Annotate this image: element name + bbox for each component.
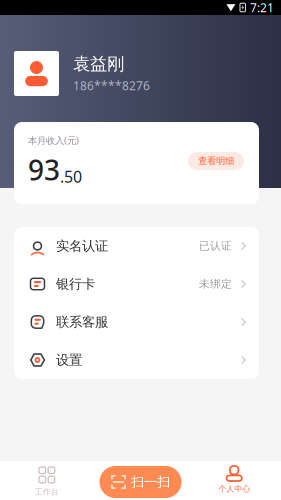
staticText: .50	[60, 166, 82, 187]
button[interactable]: 查看明细	[188, 152, 244, 170]
button[interactable]: 联系客服	[14, 303, 259, 341]
button[interactable]: 个人中心	[187, 461, 281, 500]
staticText: 查看明细	[198, 155, 234, 167]
staticText: 工作台	[35, 487, 59, 497]
staticText: 联系客服	[56, 314, 108, 330]
staticText: 实名认证	[56, 238, 108, 254]
staticText: 设置	[56, 352, 82, 368]
staticText: 未绑定	[199, 277, 232, 290]
staticText: 93	[28, 151, 60, 188]
staticText: 袁益刚	[73, 53, 124, 75]
staticText: 个人中心	[218, 484, 250, 494]
staticText: 186****8276	[73, 78, 150, 94]
staticText: 银行卡	[56, 276, 95, 292]
button[interactable]: 银行卡	[14, 265, 259, 303]
button[interactable]: 设置	[14, 341, 259, 379]
button[interactable]: 工作台	[0, 461, 94, 500]
staticText: 已认证	[199, 239, 232, 252]
button[interactable]: 实名认证	[14, 227, 259, 265]
staticText: 7:21	[250, 0, 274, 15]
staticText: 本月收入(元)	[28, 134, 79, 146]
staticText: 扫一扫	[131, 474, 170, 490]
button[interactable]: 扫一扫	[99, 466, 181, 498]
